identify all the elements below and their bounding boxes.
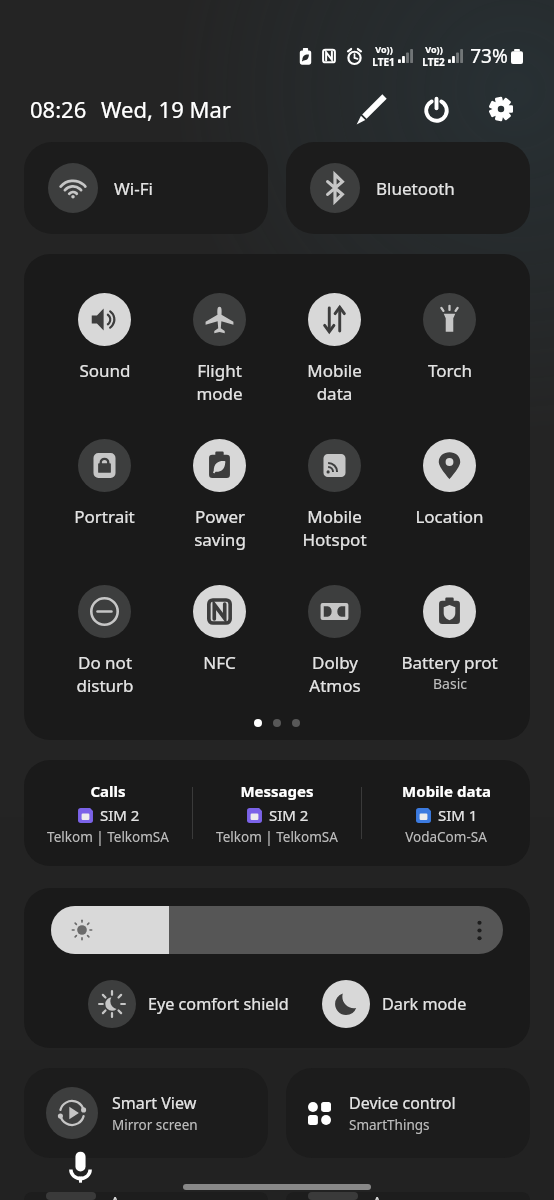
staticText: SIM 2 — [269, 805, 309, 825]
staticText: Bluetooth — [376, 177, 455, 200]
staticText: Dolby Atmos — [309, 651, 361, 697]
staticText: Messages — [240, 781, 314, 801]
button[interactable]: NFC — [162, 585, 277, 674]
staticText: Mobile Hotspot — [302, 505, 367, 551]
staticText: SIM 1 — [438, 805, 478, 825]
staticText: VodaCom-SA — [405, 828, 487, 846]
staticText: Calls — [90, 781, 126, 801]
button[interactable]: Settings — [479, 87, 523, 131]
staticText: Power saving — [194, 505, 246, 551]
staticText: SmartThings — [349, 1116, 430, 1134]
staticText: LTE1 — [372, 55, 395, 69]
staticText: SIM 2 — [100, 805, 140, 825]
staticText: Mobile data — [402, 781, 491, 801]
staticText: LTE2 — [422, 55, 445, 69]
button[interactable]: Device control — [286, 1068, 530, 1158]
staticText: Aa — [372, 1192, 392, 1200]
staticText: Vo)) — [425, 43, 443, 55]
button[interactable] — [51, 906, 503, 954]
staticText: 73% — [470, 43, 508, 69]
button[interactable]: Wi-Fi — [24, 142, 268, 234]
staticText: Mobile data — [307, 359, 362, 405]
staticText: Mirror screen — [112, 1116, 198, 1134]
button[interactable]: Dark mode — [322, 980, 467, 1028]
staticText: Wi-Fi — [114, 177, 153, 200]
button[interactable]: Mobile Hotspot — [277, 439, 392, 551]
button[interactable]: Messages — [193, 781, 361, 846]
staticText: Wed, 19 Mar — [101, 94, 231, 124]
button[interactable]: Bluetooth — [286, 142, 530, 234]
button[interactable]: Edit — [349, 87, 393, 131]
button[interactable]: Battery prot — [392, 585, 507, 693]
button[interactable]: Mobile data — [362, 781, 530, 846]
button[interactable]: Do not disturb — [47, 585, 162, 697]
button[interactable]: Eye comfort shield — [88, 980, 289, 1028]
button[interactable]: Power saving — [162, 439, 277, 551]
staticText: Eye comfort shield — [148, 993, 289, 1015]
staticText: Do not disturb — [76, 651, 134, 697]
staticText: Sound — [79, 359, 131, 382]
staticText: Battery prot — [401, 651, 498, 674]
button[interactable]: Mobile data — [277, 293, 392, 405]
staticText: Portrait — [74, 505, 135, 528]
staticText: 08:26 — [30, 94, 87, 124]
other: Voice input — [69, 1151, 92, 1183]
staticText: Basic — [433, 674, 467, 693]
button[interactable]: Portrait — [47, 439, 162, 528]
staticText: Telkom | TelkomSA — [47, 828, 169, 846]
button[interactable]: Flight mode — [162, 293, 277, 405]
button[interactable]: Sound — [47, 293, 162, 382]
staticText: Telkom | TelkomSA — [216, 828, 338, 846]
button[interactable]: Torch — [392, 293, 507, 382]
staticText: Location — [415, 505, 484, 528]
button[interactable]: Calls — [24, 781, 192, 846]
button[interactable]: Smart View — [24, 1068, 268, 1158]
staticText: Device control — [349, 1092, 456, 1114]
staticText: Vo)) — [375, 43, 393, 55]
staticText: Aa — [110, 1192, 130, 1200]
staticText: Dark mode — [382, 993, 467, 1015]
staticText: Flight mode — [196, 359, 243, 405]
staticText: Torch — [428, 359, 472, 382]
staticText: NFC — [203, 651, 236, 674]
button[interactable]: Dolby Atmos — [277, 585, 392, 697]
button[interactable]: Power — [414, 87, 458, 131]
button[interactable]: Location — [392, 439, 507, 528]
staticText: Smart View — [112, 1092, 197, 1114]
